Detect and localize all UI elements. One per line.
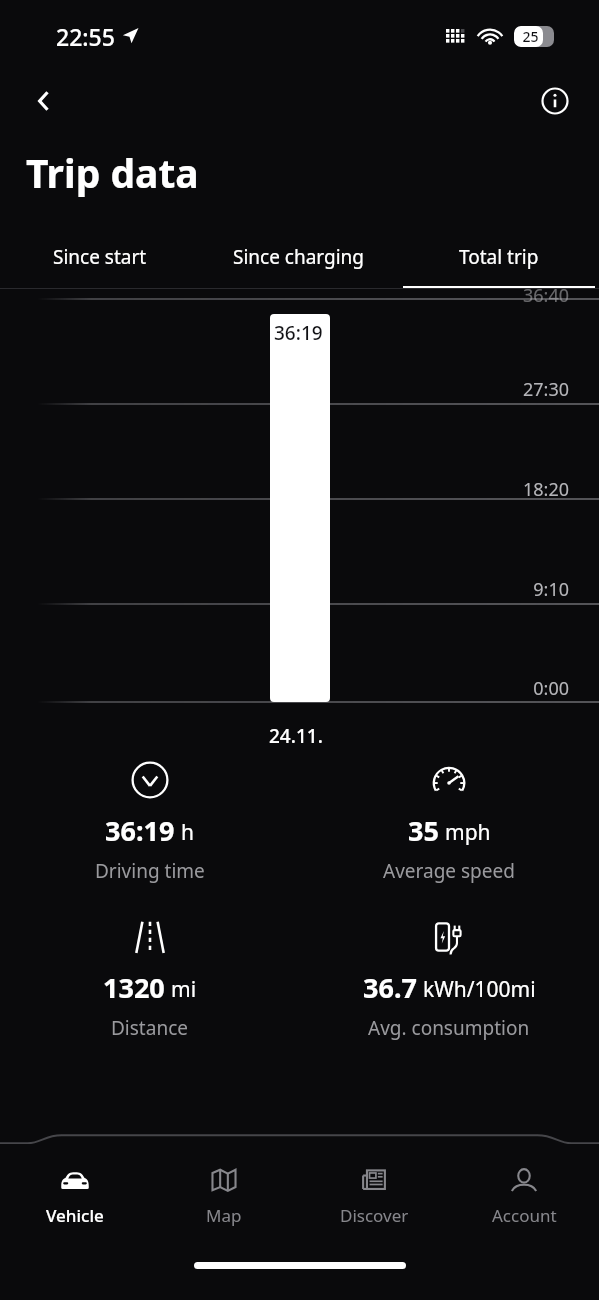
button[interactable]: Back (22, 79, 66, 123)
staticText: kWh/100mi (423, 975, 536, 1004)
button[interactable]: Information (533, 79, 577, 123)
staticText: 0:00 (0, 676, 569, 701)
staticText: Average speed (383, 858, 515, 884)
staticText: 9:10 (0, 577, 569, 602)
button[interactable]: Account (449, 1150, 599, 1227)
staticText: 1320 (103, 969, 165, 1006)
staticText: Account (492, 1204, 557, 1227)
staticText: 24.11. (269, 723, 323, 749)
staticText: mph (445, 818, 491, 847)
button[interactable]: 35 (299, 755, 599, 890)
button[interactable]: Since charging (199, 225, 399, 289)
button[interactable]: Total trip (399, 225, 599, 289)
staticText: Since charging (233, 244, 365, 270)
staticText: Distance (111, 1015, 188, 1041)
button[interactable]: Vehicle (0, 1150, 149, 1227)
staticText: h (181, 818, 194, 847)
staticText: Driving time (95, 858, 205, 884)
staticText: 22:55 (56, 21, 115, 52)
button[interactable]: Map (149, 1150, 299, 1227)
staticText: Since start (53, 244, 147, 270)
staticText: 35 (408, 812, 439, 849)
button[interactable]: Discover (299, 1150, 449, 1227)
staticText: Avg. consumption (368, 1015, 530, 1041)
staticText: Trip data (26, 146, 199, 199)
staticText: 27:30 (0, 377, 569, 402)
button[interactable]: 36:19 (0, 755, 299, 890)
staticText: Total trip (459, 244, 539, 270)
staticText: Map (206, 1204, 242, 1227)
staticText: Vehicle (46, 1204, 104, 1227)
staticText: 25 (514, 27, 547, 46)
staticText: 36:19 (105, 812, 175, 849)
button[interactable]: 1320 (0, 912, 299, 1047)
button[interactable]: 36.7 (299, 912, 599, 1047)
button[interactable]: Since start (0, 225, 199, 289)
staticText: 18:20 (0, 477, 569, 502)
staticText: 36:40 (0, 283, 569, 308)
staticText: mi (171, 975, 197, 1004)
staticText: 36.7 (363, 969, 417, 1006)
staticText: Discover (340, 1204, 409, 1227)
staticText: 36:19 (274, 320, 323, 346)
